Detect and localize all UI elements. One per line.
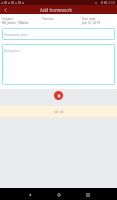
staticText: ad · ad [54, 110, 64, 114]
button[interactable]: Back [24, 189, 35, 200]
staticText: Description [4, 49, 20, 53]
button[interactable]: Back [0, 5, 11, 14]
button[interactable]: Home [53, 189, 64, 200]
button[interactable]: Subject [0, 17, 39, 25]
staticText: Homework name [4, 33, 28, 37]
staticText: Mr. Jones | Maths [2, 21, 29, 25]
staticText: Jan 12, 2019 [82, 21, 101, 25]
staticText: Subject [2, 17, 13, 21]
staticText: Due date [82, 17, 96, 21]
staticText: Teacher [42, 17, 54, 21]
button[interactable]: Teacher [39, 17, 78, 21]
button[interactable]: Homework name [2, 28, 115, 40]
staticText: 4:58 [108, 0, 116, 5]
staticText: Add homework [40, 7, 73, 13]
button[interactable]: Description [2, 44, 115, 85]
button[interactable]: Save homework [54, 91, 63, 100]
button[interactable]: Due date [78, 17, 117, 25]
button[interactable]: Recent apps [82, 189, 93, 200]
